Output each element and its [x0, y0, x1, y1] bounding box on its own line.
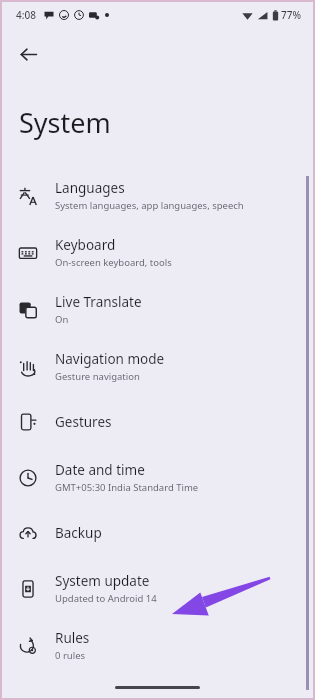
button[interactable]: System update: [0, 560, 315, 617]
staticText: 77%: [281, 8, 301, 22]
staticText: System update: [55, 572, 150, 590]
staticText: Languages: [55, 179, 125, 197]
staticText: Keyboard: [55, 236, 116, 254]
staticText: Backup: [55, 524, 102, 542]
button[interactable]: Gestures: [0, 395, 315, 449]
staticText: Updated to Android 14: [55, 592, 157, 605]
button[interactable]: Back: [8, 34, 48, 74]
button[interactable]: Navigation mode: [0, 338, 315, 395]
staticText: Navigation mode: [55, 350, 165, 368]
staticText: Rules: [55, 629, 90, 647]
staticText: Gesture navigation: [55, 370, 140, 383]
button[interactable]: Keyboard: [0, 224, 315, 281]
staticText: Gestures: [55, 413, 112, 431]
staticText: System: [19, 104, 111, 141]
button[interactable]: Backup: [0, 506, 315, 560]
staticText: GMT+05:30 India Standard Time: [55, 481, 199, 494]
staticText: On: [55, 313, 69, 326]
staticText: On-screen keyboard, tools: [55, 256, 172, 269]
staticText: System languages, app languages, speech: [55, 199, 244, 212]
button[interactable]: Live Translate: [0, 281, 315, 338]
button[interactable]: Languages: [0, 167, 315, 224]
button[interactable]: Date and time: [0, 449, 315, 506]
staticText: Date and time: [55, 461, 145, 479]
staticText: 0 rules: [55, 649, 86, 662]
button[interactable]: Rules: [0, 617, 315, 674]
staticText: Live Translate: [55, 293, 142, 311]
staticText: 4:08: [16, 8, 36, 22]
